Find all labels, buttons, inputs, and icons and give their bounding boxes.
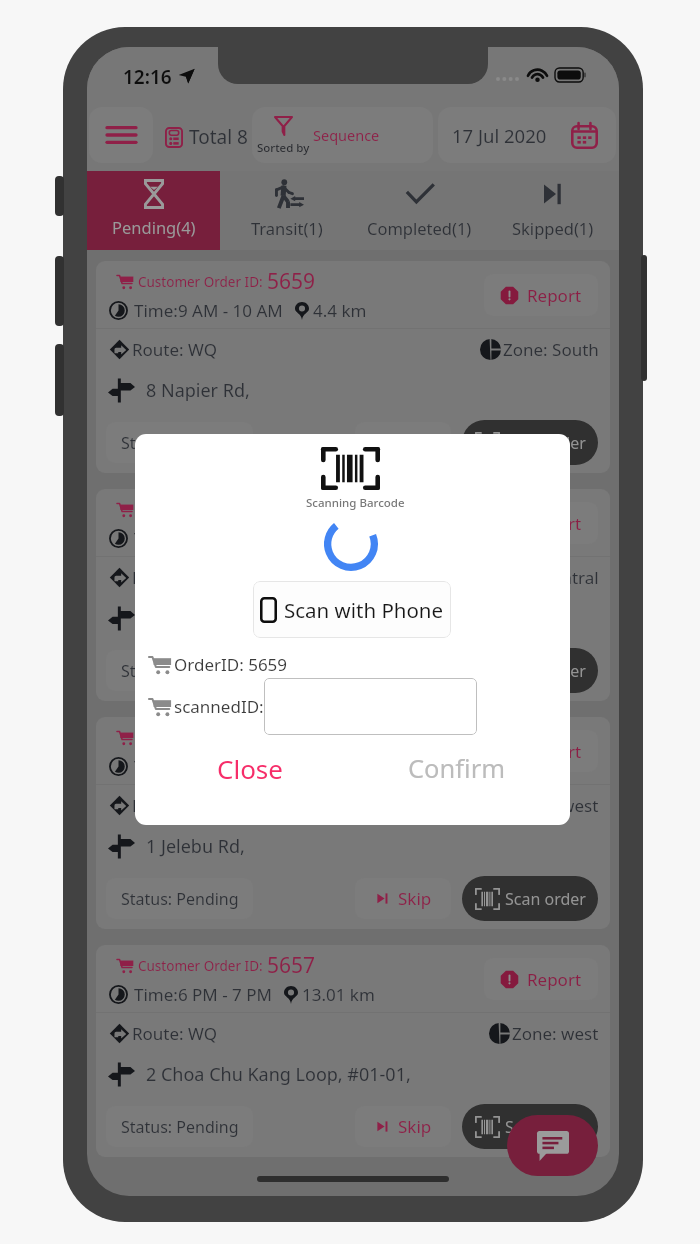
button[interactable]: Customer Order ID: — [96, 945, 610, 1157]
staticText: Sorted by — [257, 140, 310, 156]
staticText: Route: WQ — [132, 1022, 217, 1045]
staticText: Sequence — [313, 125, 380, 145]
staticText: Scan with Phone — [284, 596, 444, 624]
staticText: Time:9 AM - 10 AM — [134, 299, 283, 322]
button[interactable]: Customer Order ID: — [96, 489, 610, 701]
button[interactable]: Menu — [89, 107, 153, 163]
staticText: Customer Order ID: — [138, 957, 267, 975]
staticText: 5656 — [267, 723, 316, 752]
staticText: Status: Pending — [121, 888, 239, 910]
staticText: Completed(1) — [367, 217, 472, 239]
staticText: Report — [527, 968, 582, 991]
button[interactable]: Pending(4) — [87, 171, 220, 250]
staticText: Status: Pending — [121, 432, 239, 454]
staticText: Customer Order ID: — [138, 273, 267, 291]
button[interactable]: Customer Order ID: — [96, 717, 610, 929]
button[interactable]: 17 Jul 2020 — [438, 107, 616, 163]
staticText: 1 Jelebu Rd, — [146, 834, 245, 859]
staticText: Scan order — [505, 1116, 586, 1138]
staticText: Report — [527, 512, 582, 535]
button[interactable]: Report — [484, 958, 598, 1000]
staticText: 13.01 km — [302, 983, 375, 1006]
staticText: Time:2 PM - 3 PM — [134, 755, 272, 778]
button[interactable]: Skip — [355, 422, 451, 463]
button[interactable]: Customer Order ID: — [96, 261, 610, 473]
staticText: Scan order — [505, 660, 586, 682]
button[interactable]: Skip — [355, 650, 451, 691]
button[interactable]: Skip — [355, 878, 451, 919]
staticText: 4.4 km — [313, 299, 367, 322]
button[interactable]: Report — [484, 274, 598, 316]
button[interactable]: Completed(1) — [353, 171, 486, 250]
staticText: Close — [217, 751, 283, 786]
staticText: 12:16 — [123, 64, 172, 90]
staticText: Pending(4) — [112, 216, 196, 238]
staticText: Zone: South — [503, 338, 599, 361]
button[interactable]: Scan with Phone — [253, 581, 451, 638]
staticText: 17 Jul 2020 — [452, 123, 547, 148]
staticText: 6.4 km — [322, 527, 376, 550]
staticText: Skip — [398, 887, 432, 910]
button[interactable]: Confirm — [382, 744, 532, 792]
button[interactable]: Skip — [355, 1106, 451, 1147]
button[interactable]: Sorted by — [252, 107, 433, 163]
staticText: Skipped(1) — [512, 217, 594, 239]
staticText: Report — [527, 284, 582, 307]
button[interactable]: Scan order — [462, 420, 598, 465]
staticText: Report — [527, 740, 582, 763]
staticText: Skip — [398, 1115, 432, 1138]
staticText: Zone: Central — [492, 566, 599, 589]
staticText: 5659 — [267, 267, 316, 296]
button[interactable]: Close — [185, 744, 315, 792]
staticText: Time:6 PM - 7 PM — [134, 983, 272, 1006]
staticText: Zone: west — [512, 794, 599, 817]
staticText: Transit(1) — [251, 217, 323, 239]
staticText: Scanning Barcode — [306, 495, 405, 511]
button[interactable]: Report — [484, 502, 598, 544]
staticText: Total 8 — [189, 124, 248, 150]
staticText: Scan order — [505, 432, 586, 454]
staticText: Status: Pending — [121, 660, 239, 682]
staticText: 5658 — [267, 495, 316, 524]
staticText: 8 Napier Rd, — [146, 378, 250, 403]
button[interactable]: Transit(1) — [220, 171, 353, 250]
staticText: 10 Hillview Rd, — [146, 606, 269, 631]
button[interactable]: Scan order — [462, 876, 598, 921]
button[interactable]: Total 8 — [165, 124, 248, 150]
staticText: Skip — [398, 659, 432, 682]
staticText: OrderID: 5659 — [174, 653, 288, 676]
button[interactable]: Report — [484, 730, 598, 772]
button[interactable]: Scan order — [462, 648, 598, 693]
staticText: Zone: west — [512, 1022, 599, 1045]
button[interactable]: Skipped(1) — [486, 171, 619, 250]
staticText: Route: WQ — [132, 566, 217, 589]
staticText: Skip — [398, 431, 432, 454]
staticText: Time:11 AM - 12 PM — [134, 527, 292, 550]
button[interactable]: Chat — [507, 1115, 598, 1176]
staticText: Status: Pending — [121, 1116, 239, 1138]
button[interactable] — [264, 678, 477, 735]
staticText: scannedID: — [174, 695, 264, 718]
staticText: Confirm — [408, 751, 506, 786]
staticText: Route: WQ — [132, 794, 217, 817]
staticText: 2 Choa Chu Kang Loop, #01-01, — [146, 1062, 411, 1087]
staticText: Scan order — [505, 888, 586, 910]
button[interactable]: Scan order — [462, 1104, 598, 1149]
staticText: Route: WQ — [132, 338, 217, 361]
staticText: 5657 — [267, 951, 316, 980]
